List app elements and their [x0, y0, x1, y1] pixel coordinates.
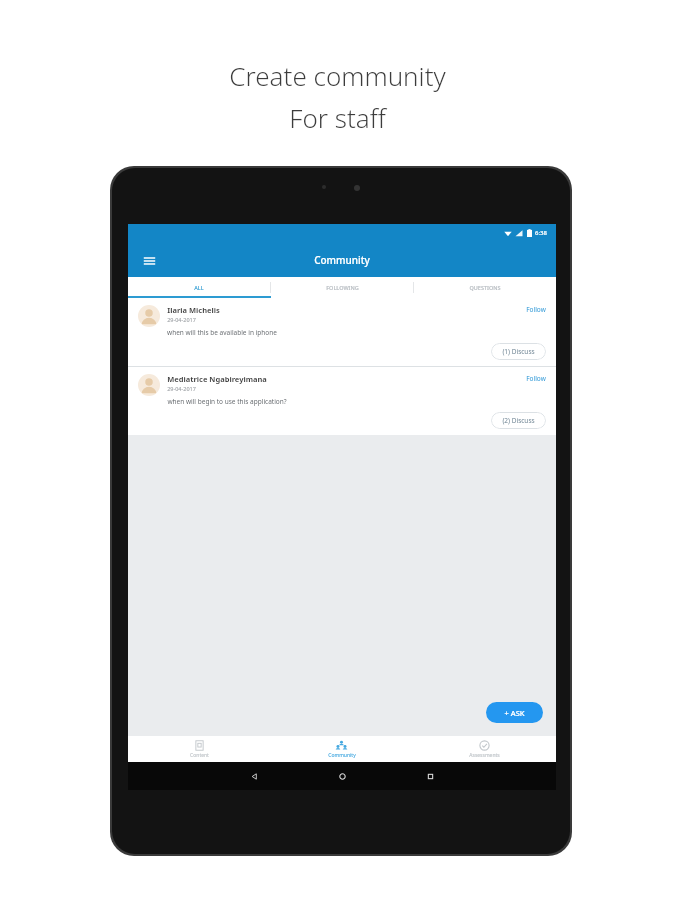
staticText: 29-04-2017	[167, 385, 196, 392]
button[interactable]: Mediatrice Ngabireyimana	[128, 367, 556, 435]
staticText: For staff	[289, 100, 386, 135]
staticText: Follow	[526, 305, 546, 314]
staticText: when will begin to use this application?	[167, 397, 287, 406]
button[interactable]: Open navigation menu	[137, 248, 161, 272]
button[interactable]: + ASK	[486, 702, 543, 723]
button[interactable]: Ilaria Michelis	[128, 298, 556, 366]
staticText: Community	[328, 752, 356, 759]
staticText: (1) Discuss	[502, 347, 535, 356]
button[interactable]: Recents	[416, 762, 444, 790]
button[interactable]: Follow	[522, 374, 546, 383]
staticText: Assessments	[469, 752, 500, 759]
staticText: QUESTIONS	[469, 284, 501, 291]
button[interactable]: Back	[240, 762, 268, 790]
staticText: when will this be available in iphone	[167, 328, 277, 337]
staticText: Mediatrice Ngabireyimana	[167, 374, 267, 384]
staticText: Create community	[229, 58, 446, 93]
button[interactable]: Follow	[522, 305, 546, 314]
staticText: 6:38	[535, 229, 547, 237]
staticText: Follow	[526, 374, 546, 383]
staticText: (2) Discuss	[502, 416, 535, 425]
staticText: 29-04-2017	[167, 316, 196, 323]
button[interactable]: QUESTIONS	[414, 277, 556, 298]
button[interactable]: (1) Discuss	[491, 343, 546, 360]
button[interactable]: Community	[270, 736, 413, 762]
staticText: + ASK	[504, 708, 525, 718]
staticText: ALL	[194, 284, 204, 291]
button[interactable]: FOLLOWING	[271, 277, 413, 298]
staticText: Content	[190, 752, 209, 759]
staticText: Ilaria Michelis	[167, 305, 220, 315]
staticText: Community	[314, 253, 370, 267]
button[interactable]: (2) Discuss	[491, 412, 546, 429]
button[interactable]: Home	[328, 762, 356, 790]
staticText: FOLLOWING	[326, 284, 359, 291]
button[interactable]: ALL	[128, 277, 270, 298]
button[interactable]: Content	[128, 736, 270, 762]
button[interactable]: Assessments	[413, 736, 556, 762]
